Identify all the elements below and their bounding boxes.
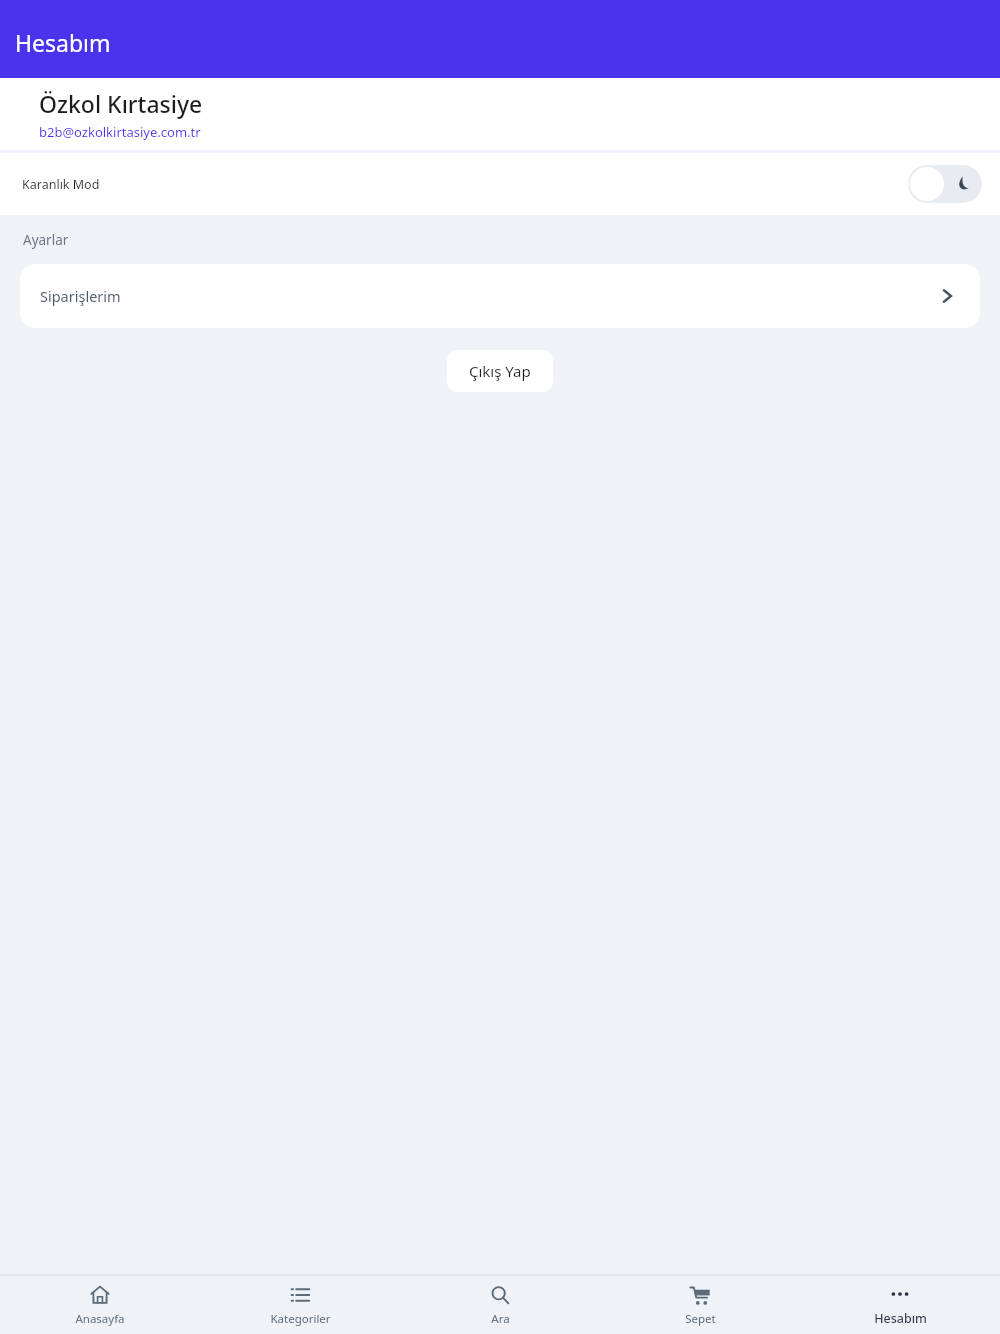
staticText: Karanlık Mod (22, 176, 100, 193)
staticText: Ayarlar (23, 231, 69, 249)
staticText: Sepet (685, 1311, 716, 1327)
button[interactable]: Çıkış Yap (447, 350, 553, 392)
button[interactable]: Hesabım (800, 1277, 1000, 1333)
button[interactable]: Karanlık Mod (908, 165, 982, 203)
staticText: b2b@ozkolkirtasiye.com.tr (39, 123, 201, 141)
button[interactable]: Karanlık Mod (0, 153, 1000, 215)
staticText: Siparişlerim (40, 286, 121, 306)
staticText: Ara (491, 1311, 510, 1327)
button[interactable]: Siparişlerim (20, 264, 980, 328)
button[interactable]: Sepet (600, 1278, 800, 1333)
staticText: Kategoriler (270, 1311, 331, 1327)
staticText: Hesabım (15, 27, 111, 58)
button[interactable]: Kategoriler (200, 1278, 400, 1333)
staticText: Anasayfa (75, 1311, 125, 1327)
button[interactable]: Ara (400, 1278, 600, 1333)
staticText: Çıkış Yap (469, 361, 531, 381)
staticText: Hesabım (874, 1310, 927, 1327)
button[interactable]: Anasayfa (0, 1278, 200, 1333)
staticText: Özkol Kırtasiye (39, 88, 203, 119)
